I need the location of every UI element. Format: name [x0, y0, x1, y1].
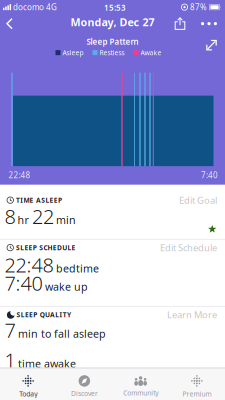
staticText: min to fall asleep: [18, 326, 106, 341]
staticText: Restless: [99, 48, 124, 57]
staticText: docomo 4G: [13, 2, 57, 12]
staticText: 8: [4, 203, 15, 229]
staticText: bedtime: [56, 261, 99, 275]
staticText: Awake: [140, 48, 161, 57]
button[interactable]: Discover: [56, 372, 112, 400]
button[interactable]: Community: [112, 372, 169, 400]
staticText: Monday, Dec 27: [70, 15, 154, 29]
staticText: 22:48: [4, 251, 53, 278]
staticText: Edit Goal: [179, 194, 217, 206]
staticText: SLEEP SCHEDULE: [16, 243, 76, 252]
staticText: 7: [4, 317, 15, 343]
staticText: 22: [32, 203, 54, 229]
staticText: Sleep Pattern: [86, 36, 138, 47]
staticText: Edit Schedule: [160, 241, 217, 254]
staticText: Premium: [182, 389, 211, 398]
button[interactable]: [203, 37, 219, 53]
staticText: Community: [123, 388, 158, 397]
staticText: 87%: [190, 2, 207, 12]
staticText: wake up: [45, 279, 88, 294]
staticText: Today: [19, 389, 37, 398]
staticText: min: [56, 213, 76, 227]
staticText: 7:40: [4, 270, 42, 296]
staticText: Discover: [71, 389, 98, 398]
staticText: 7:40: [201, 170, 218, 180]
staticText: Learn More: [167, 308, 217, 321]
staticText: hr: [17, 213, 28, 227]
staticText: 22:48: [8, 170, 30, 180]
staticText: Asleep: [62, 48, 83, 57]
staticText: TIME ASLEEP: [16, 196, 62, 205]
button[interactable]: [174, 17, 186, 30]
button[interactable]: Edit Goal: [179, 194, 217, 206]
button[interactable]: [5, 18, 15, 30]
button[interactable]: [186, 22, 225, 25]
button[interactable]: Premium: [169, 372, 225, 400]
staticText: 15:53: [104, 2, 126, 13]
staticText: 1: [4, 347, 15, 373]
staticText: time awake: [18, 356, 76, 371]
button[interactable]: Learn More: [167, 308, 217, 321]
staticText: SLEEP QUALITY: [16, 310, 71, 319]
button[interactable]: Edit Schedule: [160, 241, 217, 254]
button[interactable]: Today: [0, 372, 56, 400]
